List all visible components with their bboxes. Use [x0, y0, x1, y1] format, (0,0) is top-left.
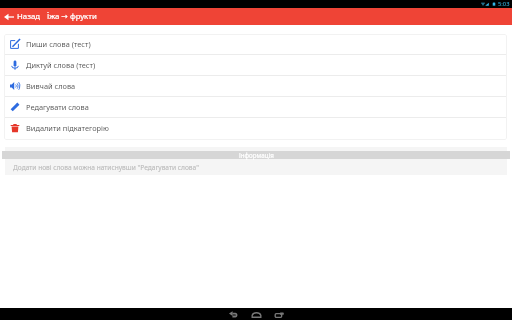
button[interactable]: Recent apps — [275, 310, 284, 319]
staticText: Пиши слова (тест) — [26, 39, 91, 49]
staticText: Видалити підкатегорію — [26, 123, 109, 133]
button[interactable]: Вивчай слова — [4, 76, 507, 96]
button[interactable]: Home — [252, 310, 261, 319]
other: Back — [4, 12, 14, 22]
staticText: Назад — [17, 11, 41, 22]
staticText: Їжа → фрукти — [47, 11, 97, 22]
button[interactable]: Пиши слова (тест) — [4, 34, 507, 54]
staticText: Додати нові слова можна натиснувши "Реда… — [13, 163, 199, 172]
staticText: Диктуй слова (тест) — [26, 60, 96, 70]
button[interactable]: Back — [0, 11, 44, 22]
button[interactable]: Back — [229, 310, 238, 319]
staticText: Редагувати слова — [26, 102, 89, 112]
button[interactable]: Редагувати слова — [4, 97, 507, 117]
button[interactable]: Видалити підкатегорію — [4, 118, 507, 138]
staticText: Інформація — [239, 151, 274, 159]
staticText: Вивчай слова — [26, 81, 76, 91]
button[interactable]: Диктуй слова (тест) — [4, 55, 507, 75]
staticText: 5:03 — [498, 0, 510, 8]
